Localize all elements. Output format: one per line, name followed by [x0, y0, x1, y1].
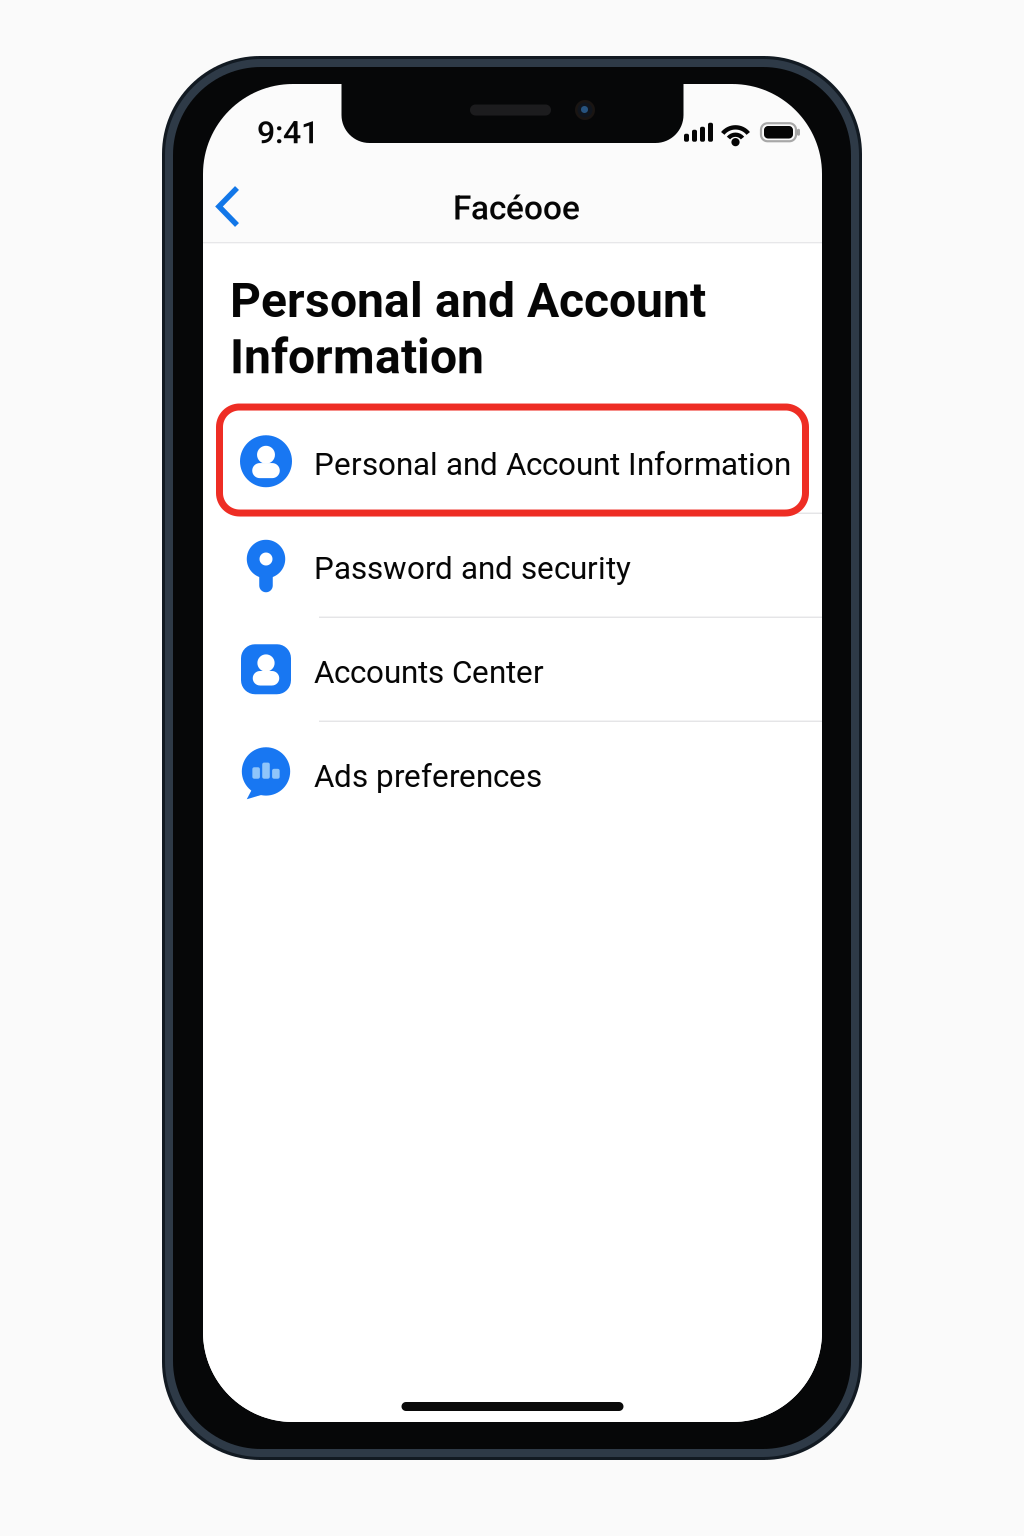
staticText: Personal and Account Information: [314, 446, 791, 483]
button[interactable]: Personal and Account Information: [203, 410, 822, 512]
staticText: Personal and Account Information: [230, 272, 706, 385]
staticText: Facéooe: [453, 188, 580, 228]
button[interactable]: Accounts Center: [203, 618, 822, 720]
staticText: Ads preferences: [314, 758, 542, 795]
staticText: Accounts Center: [314, 654, 544, 691]
button[interactable]: Password and security: [203, 514, 822, 616]
staticText: Password and security: [314, 550, 631, 587]
button[interactable]: Back: [203, 171, 261, 235]
button[interactable]: Ads preferences: [203, 722, 822, 824]
staticText: 9:41: [257, 113, 319, 151]
